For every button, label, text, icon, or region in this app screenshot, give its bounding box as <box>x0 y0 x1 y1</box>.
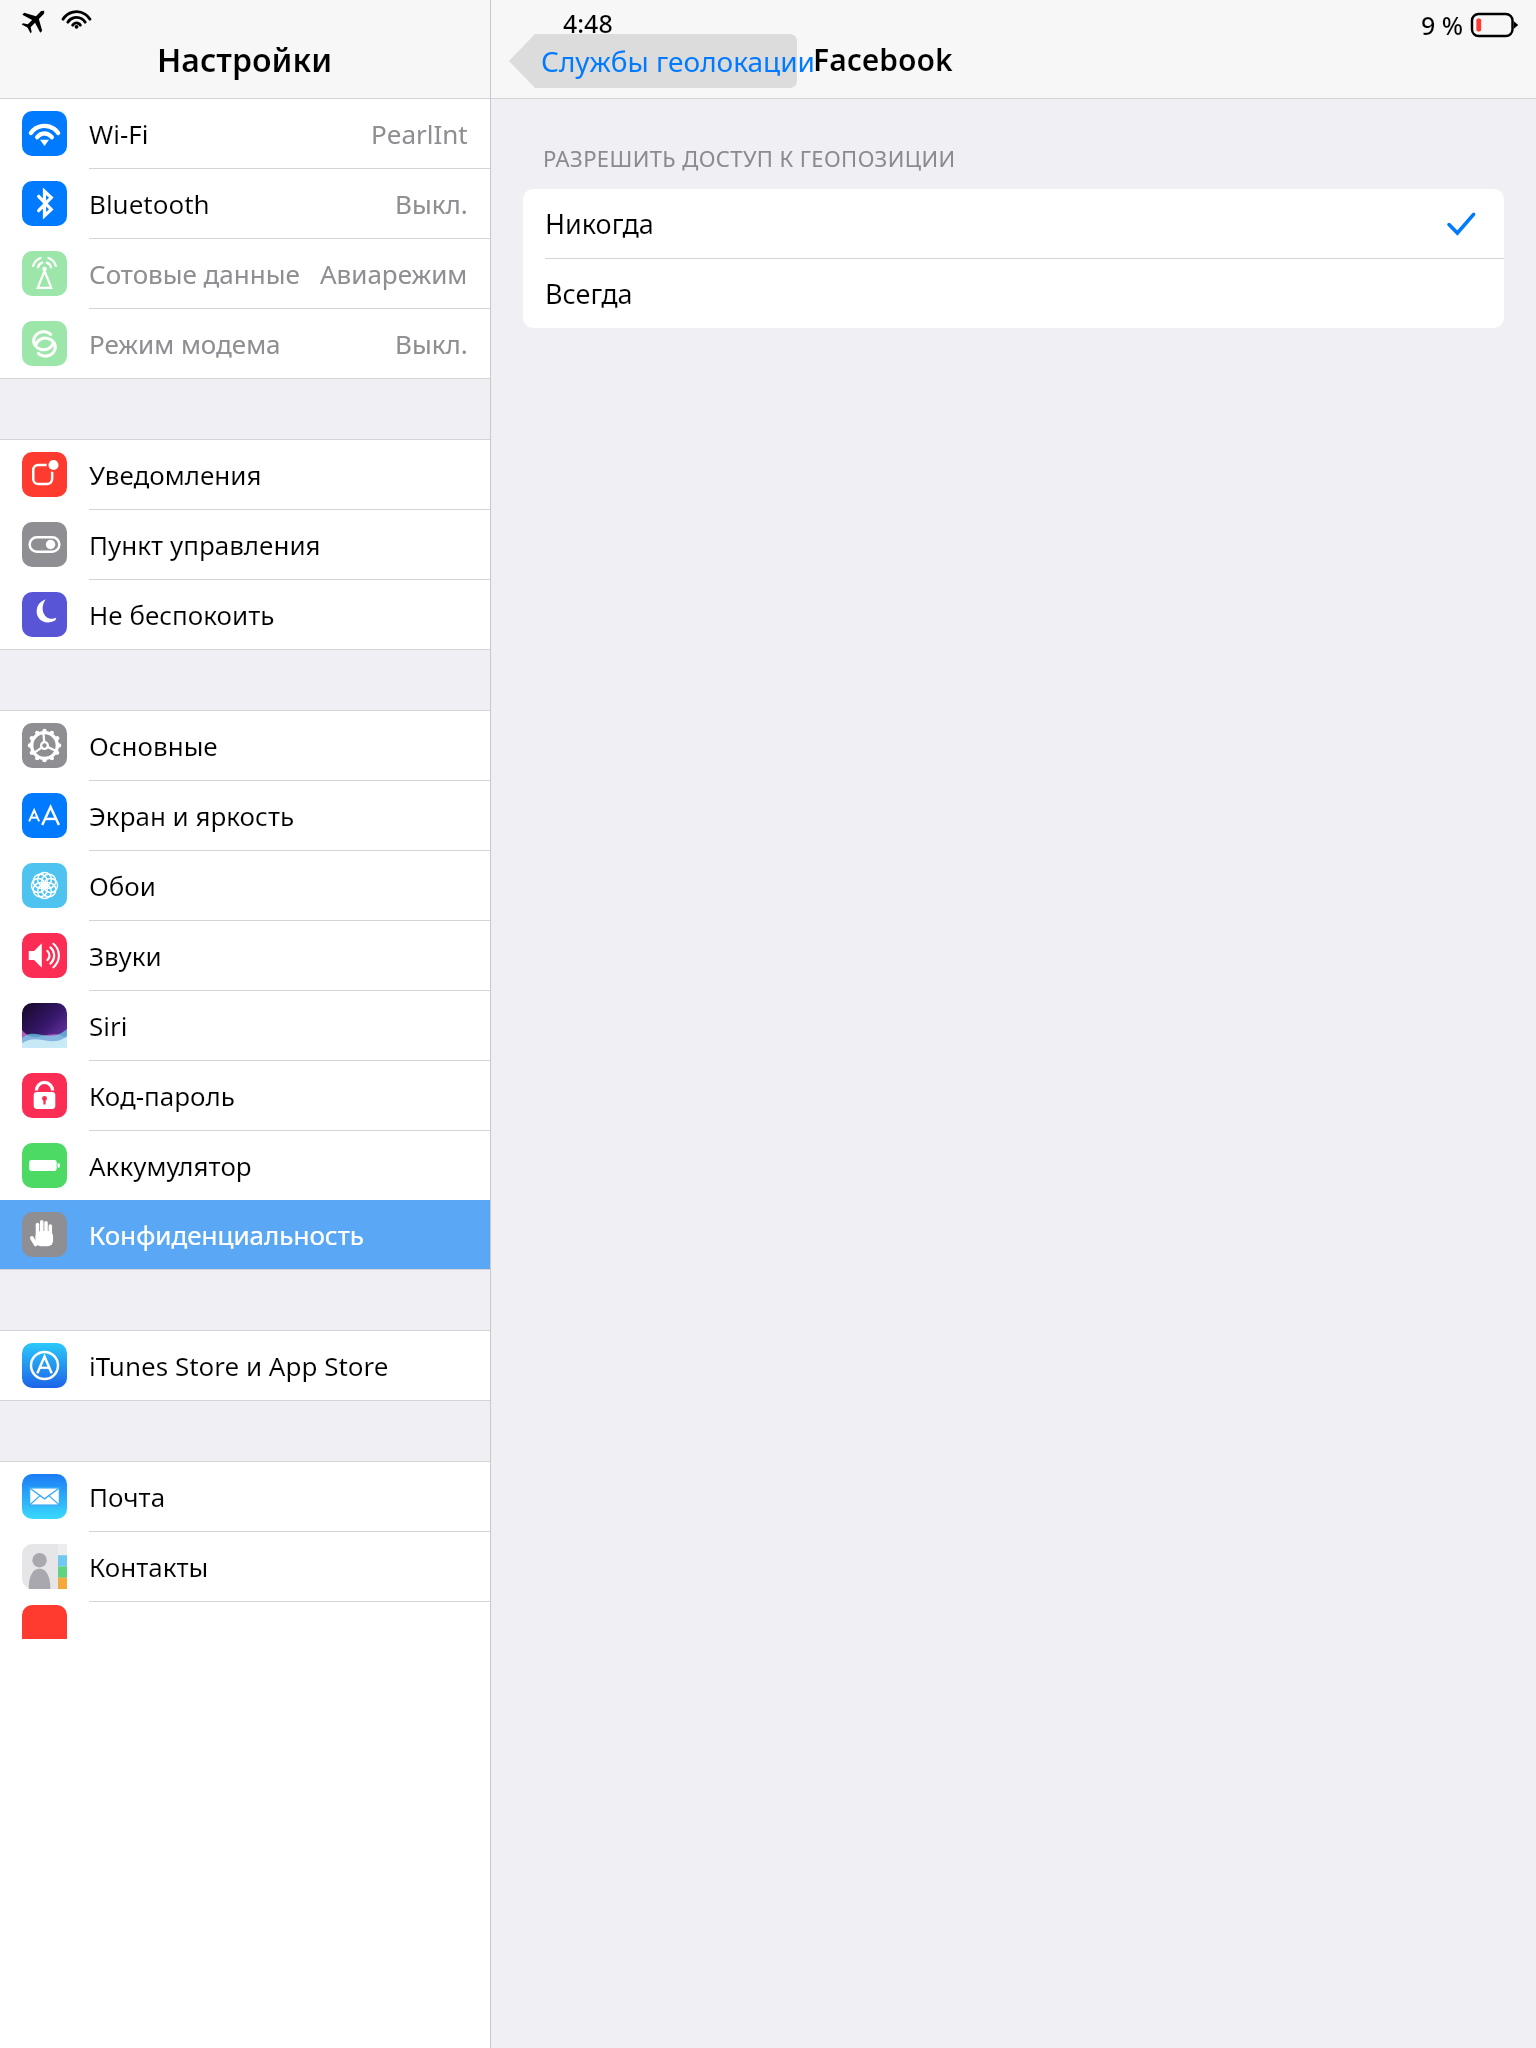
staticText: Выкл. <box>395 326 468 361</box>
staticText: iTunes Store и App Store <box>89 1348 389 1383</box>
button[interactable]: Никогда <box>523 189 1504 258</box>
staticText: Не беспокоить <box>89 597 275 632</box>
button[interactable]: Уведомления <box>0 440 490 509</box>
staticText: Звуки <box>89 938 162 973</box>
staticText: Пункт управления <box>89 527 321 562</box>
staticText: Обои <box>89 868 156 903</box>
other: Wi-Fi <box>63 6 90 33</box>
button[interactable]: Почта <box>0 1462 490 1531</box>
button[interactable]: Контакты <box>0 1532 490 1601</box>
staticText: Экран и яркость <box>89 798 295 833</box>
button[interactable]: Аккумулятор <box>0 1131 490 1200</box>
staticText: 4:48 <box>563 6 613 40</box>
other: Батарея 9 процентов <box>1472 14 1518 36</box>
button[interactable]: Wi-Fi <box>0 99 490 168</box>
staticText: Конфиденциальность <box>89 1217 364 1252</box>
button[interactable]: Режим модема <box>0 309 490 378</box>
button[interactable]: Пункт управления <box>0 510 490 579</box>
staticText: Bluetooth <box>89 186 210 221</box>
button[interactable]: Экран и яркость <box>0 781 490 850</box>
staticText: Настройки <box>157 38 333 82</box>
staticText: Аккумулятор <box>89 1148 252 1183</box>
button[interactable]: Службы геолокации <box>509 34 816 88</box>
staticText: 9 % <box>1421 8 1464 42</box>
staticText: Wi-Fi <box>89 116 149 151</box>
button[interactable]: Не беспокоить <box>0 580 490 649</box>
staticText: Основные <box>89 728 218 763</box>
staticText: Facebook <box>813 39 953 80</box>
staticText: Режим модема <box>89 326 281 361</box>
button[interactable]: Основные <box>0 711 490 780</box>
button[interactable]: Сотовые данные <box>0 239 490 308</box>
staticText: РАЗРЕШИТЬ ДОСТУП К ГЕОПОЗИЦИИ <box>543 143 956 173</box>
button[interactable]: Обои <box>0 851 490 920</box>
other: Авиарежим <box>22 6 49 33</box>
button[interactable]: Siri <box>0 991 490 1060</box>
staticText: Всегда <box>545 275 633 312</box>
staticText: Авиарежим <box>320 256 468 291</box>
other: Выбрано <box>1446 209 1476 239</box>
button[interactable]: Конфиденциальность <box>0 1200 490 1269</box>
staticText: Siri <box>89 1008 128 1043</box>
staticText: Сотовые данные <box>89 256 300 291</box>
staticText: PearlInt <box>371 116 468 151</box>
button[interactable]: Всегда <box>523 259 1504 328</box>
staticText: Никогда <box>545 205 654 242</box>
button[interactable]: Код-пароль <box>0 1061 490 1130</box>
button[interactable]: Звуки <box>0 921 490 990</box>
staticText: Контакты <box>89 1549 209 1584</box>
staticText: Уведомления <box>89 457 262 492</box>
staticText: Почта <box>89 1479 166 1514</box>
staticText: Службы геолокации <box>541 42 816 80</box>
button[interactable]: Bluetooth <box>0 169 490 238</box>
staticText: Код-пароль <box>89 1078 235 1113</box>
staticText: Выкл. <box>395 186 468 221</box>
button[interactable]: iTunes Store и App Store <box>0 1331 490 1400</box>
